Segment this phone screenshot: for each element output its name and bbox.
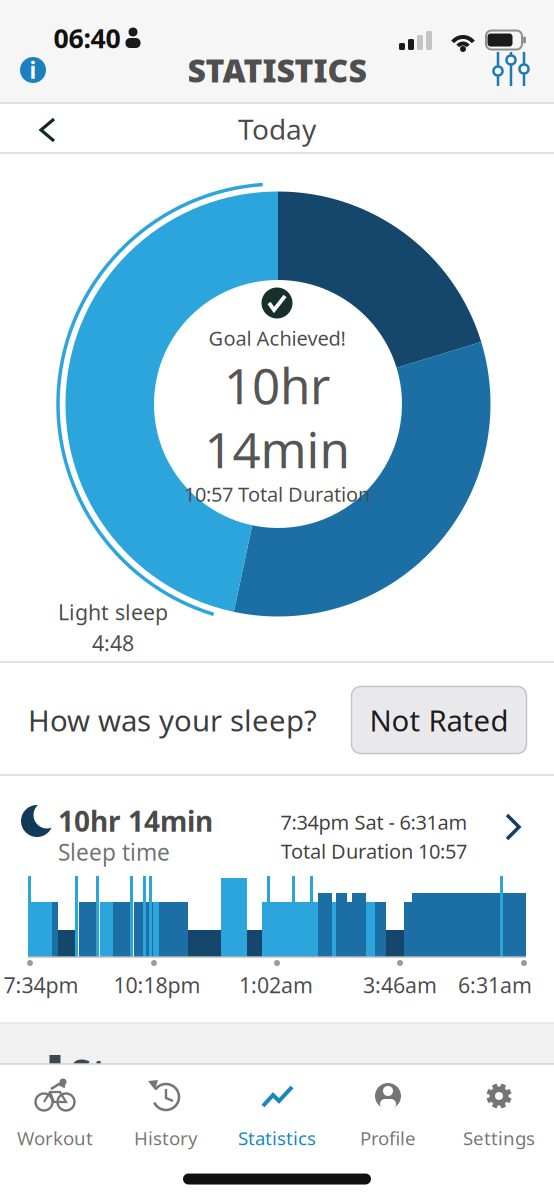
button[interactable]: Workout <box>0 1064 110 1154</box>
staticText: Statistics <box>238 1126 316 1150</box>
staticText: 10:18pm <box>113 971 200 999</box>
staticText: 1:02am <box>239 971 313 999</box>
staticText: 7:34pm <box>3 971 78 999</box>
staticText: Sleep time <box>58 837 170 867</box>
staticText: Goal Achieved! <box>208 325 345 351</box>
staticText: Light sleep <box>58 598 168 626</box>
staticText: Today <box>238 110 316 148</box>
staticText: 6:31am <box>458 971 532 999</box>
staticText: 14min <box>204 416 349 482</box>
staticText: 06:40 <box>53 20 120 56</box>
staticText: How was your sleep? <box>28 700 317 739</box>
button[interactable] <box>489 46 533 90</box>
staticText: 7:34pm Sat - 6:31am <box>280 809 467 835</box>
staticText: Not Rated <box>369 700 508 739</box>
staticText: Profile <box>360 1126 416 1150</box>
staticText: 10hr <box>224 352 330 418</box>
staticText: History <box>134 1126 198 1150</box>
button[interactable]: Profile <box>333 1064 443 1154</box>
button[interactable]: Not Rated <box>351 686 526 753</box>
button[interactable] <box>34 115 64 145</box>
staticText: Workout <box>17 1126 93 1150</box>
staticText: 3:46am <box>363 971 437 999</box>
staticText: 4:48 <box>92 629 134 657</box>
staticText: Total Duration 10:57 <box>281 838 467 864</box>
staticText: 10hr 14min <box>58 802 213 840</box>
button[interactable]: Statistics <box>222 1064 332 1154</box>
button[interactable]: History <box>111 1064 221 1154</box>
button[interactable]: Settings <box>444 1064 554 1154</box>
staticText: 10:57 Total Duration <box>184 481 370 507</box>
button[interactable] <box>499 810 527 844</box>
staticText: Settings <box>463 1126 535 1150</box>
staticText: Ste <box>70 1047 129 1097</box>
button[interactable]: i <box>20 55 46 85</box>
staticText: STATISTICS <box>187 49 366 91</box>
staticText: i <box>29 55 36 85</box>
